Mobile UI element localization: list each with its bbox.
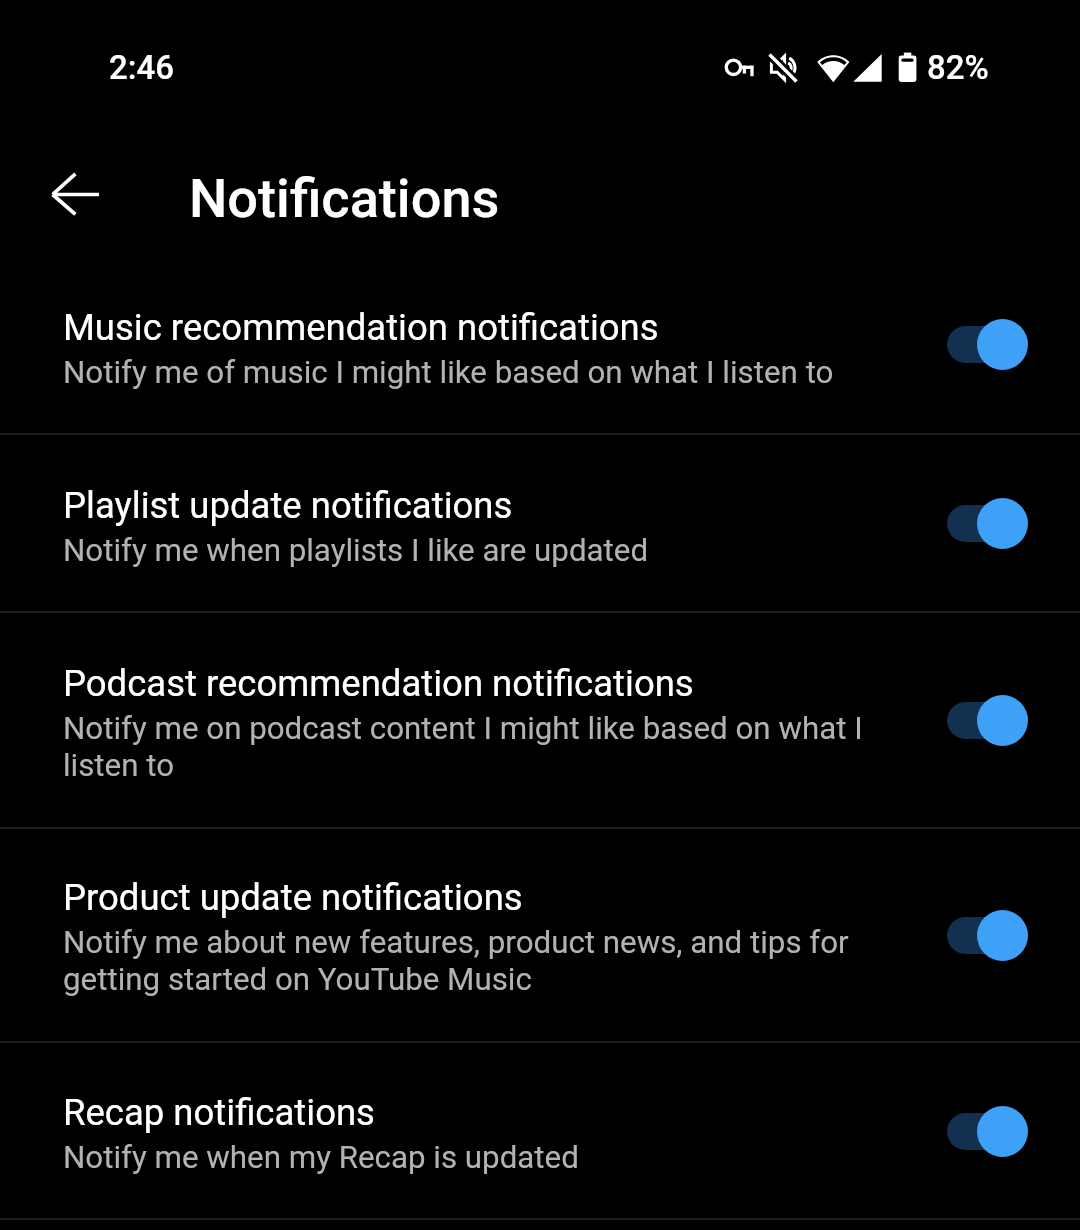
- button[interactable]: Recap notifications, on: [932, 1083, 1066, 1179]
- staticText: Notify me when playlists I like are upda…: [63, 532, 649, 569]
- button[interactable]: Recap notifications: [0, 1043, 1080, 1218]
- button[interactable]: Podcast recommendation notifications, on: [932, 672, 1066, 768]
- button[interactable]: Playlist update notifications: [0, 435, 1080, 611]
- button[interactable]: Music recommendation notifications, on: [932, 296, 1066, 392]
- staticText: Music recommendation notifications: [63, 306, 659, 349]
- staticText: Podcast recommendation notifications: [63, 662, 694, 705]
- button[interactable]: Product update notifications, on: [932, 887, 1066, 983]
- button[interactable]: Product update notifications: [0, 829, 1080, 1041]
- button[interactable]: Playlist update notifications, on: [932, 475, 1066, 571]
- button[interactable]: Podcast recommendation notifications: [0, 613, 1080, 827]
- staticText: 82%: [927, 48, 989, 87]
- staticText: Notify me when my Recap is updated: [63, 1139, 579, 1176]
- staticText: Notify me on podcast content I might lik…: [63, 710, 903, 783]
- staticText: Recap notifications: [63, 1091, 375, 1134]
- staticText: 2:46: [109, 48, 175, 87]
- staticText: Notify me of music I might like based on…: [63, 354, 834, 391]
- staticText: Notify me about new features, product ne…: [63, 924, 903, 997]
- staticText: Playlist update notifications: [63, 484, 513, 527]
- staticText: Notifications: [189, 167, 500, 230]
- button[interactable]: Music recommendation notifications: [0, 255, 1080, 433]
- button[interactable]: Back: [28, 146, 124, 242]
- staticText: Product update notifications: [63, 876, 523, 919]
